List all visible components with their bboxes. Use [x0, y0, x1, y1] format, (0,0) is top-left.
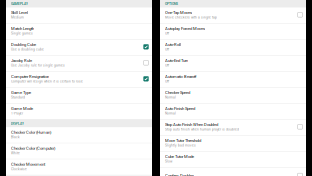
- staticText: Slightly bad moves: [165, 144, 196, 147]
- button[interactable]: Auto-Roll: [160, 40, 306, 56]
- staticText: Checker Color (Human): [11, 130, 51, 135]
- staticText: Single games: [11, 32, 33, 35]
- button[interactable]: Move Tutor Threshold: [160, 136, 306, 152]
- button[interactable]: Game Mode: [6, 104, 152, 120]
- button[interactable]: Checker Color (Computer): [6, 143, 152, 159]
- button[interactable]: One-Tap Moves: [160, 8, 306, 24]
- staticText: Autoplay Forced Moves: [165, 26, 205, 31]
- button[interactable]: Jacoby Rule: [6, 56, 152, 72]
- staticText: Checker Movement: [11, 162, 45, 167]
- button[interactable]: Computer Resignation: [6, 72, 152, 88]
- button[interactable]: Autoplay Forced Moves: [160, 24, 306, 40]
- button[interactable]: Automatic Bearoff: [160, 72, 306, 88]
- staticText: GAMEPLAY: [11, 2, 28, 6]
- staticText: Computer Resignation: [11, 74, 49, 79]
- staticText: Off: [165, 80, 169, 83]
- staticText: Checker Color (Computer): [11, 146, 55, 151]
- button[interactable]: Confirm Doubles: [160, 168, 306, 176]
- button[interactable]: Stop Auto Finish When Doubled: [160, 120, 306, 136]
- staticText: Match Length: [11, 26, 34, 31]
- staticText: OPTIONS: [165, 2, 178, 6]
- button[interactable]: Match Length: [6, 24, 152, 40]
- staticText: Move Tutor Threshold: [165, 138, 201, 143]
- staticText: Auto Finish Speed: [165, 106, 195, 111]
- staticText: Black: [11, 135, 20, 139]
- staticText: 1-Player: [11, 112, 23, 115]
- button[interactable]: Checker Movement: [6, 159, 152, 175]
- staticText: Normal: [165, 96, 176, 99]
- button[interactable]: Game Type: [6, 88, 152, 104]
- staticText: Clockwise: [11, 167, 27, 171]
- staticText: White: [11, 151, 20, 155]
- button[interactable]: Auto Finish Speed: [160, 104, 306, 120]
- button[interactable]: Checker Color (Human): [6, 127, 152, 143]
- staticText: One-Tap Moves: [165, 10, 192, 15]
- staticText: Slow: [165, 160, 172, 163]
- staticText: Game Type: [11, 90, 31, 95]
- staticText: Move checkers with a single tap: [165, 16, 217, 19]
- staticText: Computer will resign when it is certain …: [11, 80, 83, 83]
- staticText: Doubling Cube: [11, 42, 36, 47]
- staticText: Off: [165, 32, 169, 35]
- staticText: Medium: [11, 16, 24, 19]
- staticText: Skill Level: [11, 10, 28, 15]
- staticText: Off: [165, 48, 169, 51]
- staticText: Game Mode: [11, 106, 33, 111]
- button[interactable]: Cube Tutor Mode: [160, 152, 306, 168]
- staticText: Stop Auto Finish When Doubled: [165, 122, 218, 127]
- button[interactable]: Auto-End Turn: [160, 56, 306, 72]
- button[interactable]: Skill Level: [6, 8, 152, 24]
- staticText: DISPLAY: [11, 122, 24, 125]
- staticText: Confirm Doubles: [165, 173, 194, 176]
- staticText: Off: [165, 64, 169, 67]
- staticText: Use Jacoby rule for single games: [11, 64, 65, 67]
- staticText: Auto-Roll: [165, 42, 181, 47]
- staticText: Cube Tutor Mode: [165, 154, 194, 159]
- staticText: Stop auto finish when human player is do…: [165, 128, 239, 131]
- staticText: Normal: [165, 112, 176, 115]
- staticText: Standard: [11, 96, 25, 99]
- staticText: Checker Speed: [165, 90, 190, 95]
- staticText: Automatic Bearoff: [165, 74, 196, 79]
- button[interactable]: Doubling Cube: [6, 40, 152, 56]
- staticText: Auto-End Turn: [165, 58, 188, 63]
- staticText: Use a doubling cube: [11, 48, 44, 51]
- button[interactable]: Checker Speed: [160, 88, 306, 104]
- staticText: Jacoby Rule: [11, 58, 32, 63]
